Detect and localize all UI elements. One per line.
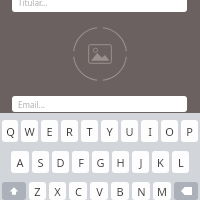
- button[interactable]: B: [111, 182, 129, 200]
- staticText: R: [66, 124, 73, 139]
- button[interactable]: G: [92, 151, 109, 173]
- button[interactable]: Y: [101, 120, 118, 142]
- staticText: E: [46, 124, 53, 139]
- staticText: P: [186, 124, 193, 139]
- staticText: K: [157, 155, 164, 170]
- button[interactable]: I: [141, 120, 158, 142]
- button[interactable]: F: [72, 151, 89, 173]
- staticText: Z: [34, 184, 41, 199]
- button[interactable]: Add photo: [73, 27, 127, 81]
- staticText: Q: [6, 124, 15, 139]
- staticText: L: [178, 155, 184, 170]
- button[interactable]: D: [52, 151, 69, 173]
- staticText: M: [157, 184, 167, 199]
- button[interactable]: E: [41, 120, 58, 142]
- button[interactable]: J: [132, 151, 149, 173]
- staticText: U: [125, 124, 134, 139]
- button[interactable]: K: [152, 151, 169, 173]
- button[interactable]: C: [69, 182, 87, 200]
- button[interactable]: Shift: [2, 182, 26, 200]
- staticText: W: [24, 124, 35, 139]
- button[interactable]: Email...: [12, 96, 187, 112]
- staticText: O: [165, 124, 174, 139]
- button[interactable]: H: [112, 151, 129, 173]
- staticText: T: [86, 124, 93, 139]
- button[interactable]: X: [49, 182, 66, 200]
- button[interactable]: W: [21, 120, 38, 142]
- button[interactable]: U: [121, 120, 138, 142]
- staticText: J: [139, 155, 143, 170]
- button[interactable]: V: [90, 182, 108, 200]
- button[interactable]: L: [172, 151, 189, 173]
- staticText: V: [96, 184, 103, 199]
- staticText: C: [75, 184, 82, 199]
- button[interactable]: M: [153, 182, 171, 200]
- button[interactable]: Titular...: [12, 0, 187, 12]
- button[interactable]: S: [32, 151, 49, 173]
- button[interactable]: P: [181, 120, 198, 142]
- staticText: Email...: [18, 99, 45, 110]
- staticText: G: [96, 155, 105, 170]
- button[interactable]: Q: [2, 120, 18, 142]
- staticText: N: [137, 184, 146, 199]
- staticText: D: [56, 155, 65, 170]
- staticText: Titular...: [18, 0, 48, 8]
- staticText: H: [116, 155, 125, 170]
- staticText: X: [54, 184, 61, 199]
- staticText: F: [78, 155, 84, 170]
- button[interactable]: O: [161, 120, 178, 142]
- staticText: S: [37, 155, 44, 170]
- staticText: B: [116, 184, 124, 199]
- staticText: Y: [106, 124, 113, 139]
- button[interactable]: A: [11, 151, 29, 173]
- button[interactable]: R: [61, 120, 78, 142]
- staticText: I: [148, 124, 152, 139]
- staticText: A: [16, 155, 24, 170]
- button[interactable]: N: [132, 182, 150, 200]
- button[interactable]: T: [81, 120, 98, 142]
- button[interactable]: Z: [29, 182, 46, 200]
- button[interactable]: Delete: [174, 182, 198, 200]
